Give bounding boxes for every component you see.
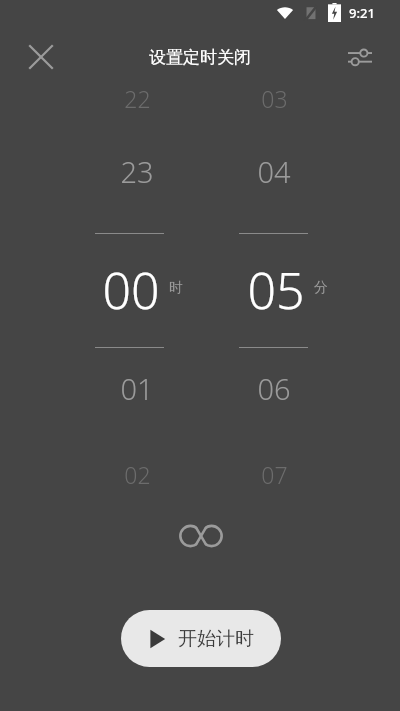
staticText: 01: [120, 369, 154, 408]
staticText: 时: [169, 279, 183, 297]
button[interactable]: 01: [97, 362, 177, 414]
button[interactable]: Settings: [333, 30, 387, 84]
button[interactable]: 07: [234, 448, 314, 500]
staticText: 分: [314, 279, 328, 297]
button[interactable]: 04: [234, 145, 314, 197]
staticText: 9:21: [349, 4, 375, 22]
staticText: 22: [124, 83, 151, 114]
staticText: 02: [124, 459, 151, 490]
button[interactable]: 23: [97, 145, 177, 197]
staticText: 06: [257, 369, 291, 408]
button[interactable]: 开始计时: [121, 610, 281, 667]
button[interactable]: 05: [231, 255, 321, 325]
button[interactable]: 06: [234, 362, 314, 414]
staticText: 00: [102, 256, 160, 324]
button[interactable]: Close: [14, 30, 68, 84]
staticText: 04: [257, 152, 291, 191]
button[interactable]: No limit: [170, 512, 232, 560]
staticText: 05: [247, 256, 305, 324]
button[interactable]: 00: [86, 255, 176, 325]
button[interactable]: 22: [97, 72, 177, 124]
staticText: 设置定时关闭: [149, 47, 251, 68]
button[interactable]: 03: [234, 72, 314, 124]
staticText: 23: [120, 152, 154, 191]
staticText: 开始计时: [178, 627, 254, 651]
staticText: 07: [261, 459, 288, 490]
staticText: 03: [261, 83, 288, 114]
button[interactable]: 02: [97, 448, 177, 500]
